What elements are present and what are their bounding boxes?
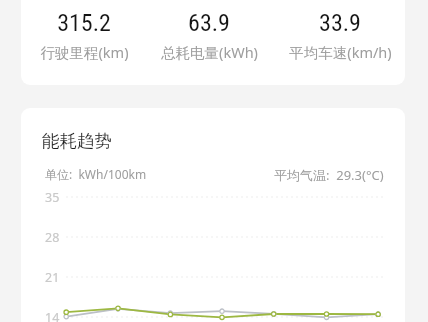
staticText: 平均车速(km/h) (289, 42, 392, 62)
staticText: 单位: kWh/100km (45, 166, 147, 182)
staticText: 21 (45, 269, 60, 286)
staticText: 总耗电量(kWh) (161, 42, 258, 62)
button[interactable]: 33.9 (278, 9, 402, 62)
button[interactable]: 63.9 (147, 9, 271, 62)
staticText: 63.9 (188, 9, 230, 37)
staticText: 14 (45, 309, 60, 322)
staticText: 33.9 (319, 9, 361, 37)
staticText: 315.2 (57, 9, 111, 37)
button[interactable]: 315.2 (22, 9, 146, 62)
staticText: 35 (45, 189, 60, 206)
staticText: 28 (45, 229, 60, 246)
staticText: 行驶里程(km) (40, 42, 129, 62)
staticText: 平均气温: 29.3(°C) (274, 166, 384, 184)
staticText: 能耗趋势 (42, 130, 112, 152)
button[interactable]: 315.2 (21, 0, 405, 85)
